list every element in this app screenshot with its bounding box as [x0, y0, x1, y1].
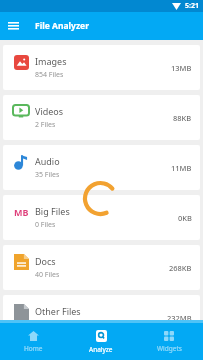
staticText: Images	[35, 55, 67, 67]
staticText: 0 Files	[35, 220, 56, 230]
staticText: Analyze	[89, 345, 113, 354]
staticText: Other Files	[35, 305, 81, 317]
staticText: Audio	[35, 155, 60, 167]
staticText: Videos	[35, 105, 64, 117]
button[interactable]: Analyze	[67, 323, 135, 360]
staticText: 40 Files	[35, 270, 60, 280]
staticText: 11MB	[171, 163, 192, 173]
staticText: Widgets	[157, 344, 182, 353]
button[interactable]: Audio	[3, 145, 200, 190]
staticText: Docs	[35, 255, 56, 267]
button[interactable]: Docs	[3, 245, 200, 290]
staticText: File Analyzer	[35, 20, 89, 32]
staticText: MB	[14, 206, 29, 218]
staticText: 5:21	[185, 1, 199, 11]
button[interactable]: Other Files	[3, 295, 200, 320]
button[interactable]: MB	[3, 195, 200, 240]
staticText: 854 Files	[35, 70, 64, 80]
staticText: 13MB	[171, 63, 192, 73]
staticText: 268KB	[169, 263, 192, 273]
staticText: 232MB	[167, 313, 192, 320]
staticText: 2 Files	[35, 120, 56, 130]
staticText: Big Files	[35, 205, 70, 217]
button[interactable]	[4, 17, 22, 35]
button[interactable]: Videos	[3, 95, 200, 140]
button[interactable]: Widgets	[135, 323, 203, 360]
staticText: 0KB	[178, 213, 192, 223]
button[interactable]: Images	[3, 45, 200, 90]
staticText: Home	[24, 344, 43, 353]
button[interactable]: Home	[0, 323, 67, 360]
staticText: 88KB	[173, 113, 192, 123]
staticText: 35 Files	[35, 170, 60, 180]
